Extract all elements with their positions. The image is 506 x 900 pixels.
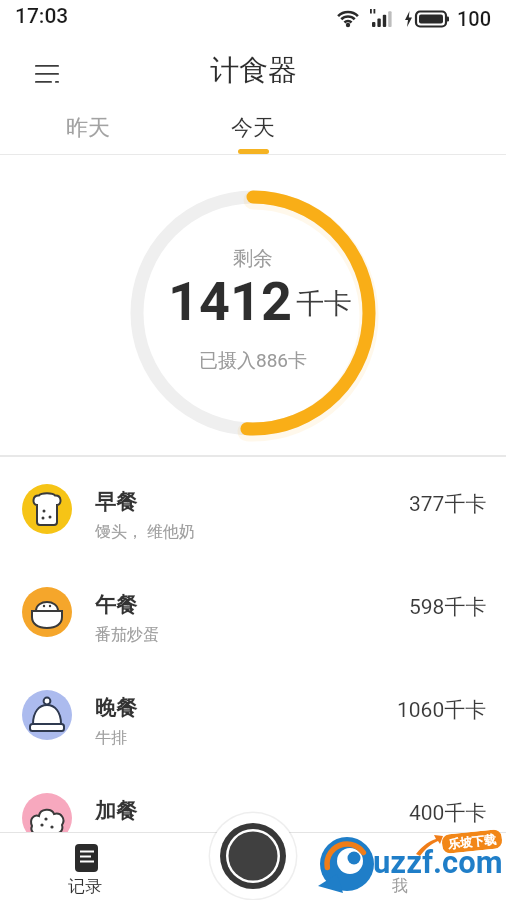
staticText: 已摄入886卡: [199, 349, 308, 373]
staticText: 1060千卡: [397, 697, 487, 723]
button[interactable]: 早餐: [0, 457, 506, 560]
staticText: 我: [392, 876, 408, 896]
staticText: 馒头， 维他奶: [95, 522, 195, 542]
button[interactable]: 午餐: [0, 560, 506, 663]
button[interactable]: 加餐: [0, 766, 506, 869]
staticText: 午餐: [95, 592, 137, 618]
staticText: 千卡: [296, 286, 352, 321]
staticText: 记录: [68, 876, 102, 897]
button[interactable]: 记录: [62, 844, 108, 897]
staticText: 昨天: [66, 114, 110, 142]
staticText: 今天: [231, 114, 275, 142]
staticText: 计食器: [210, 52, 297, 89]
staticText: 1412: [168, 270, 292, 333]
staticText: 400千卡: [409, 800, 487, 826]
button[interactable]: 我: [360, 832, 440, 900]
staticText: 早餐: [95, 489, 137, 515]
button[interactable]: [35, 65, 59, 83]
staticText: 番茄炒蛋: [95, 625, 159, 645]
button[interactable]: 晚餐: [0, 663, 506, 766]
staticText: uzzf.com: [373, 844, 503, 880]
staticText: 17:03: [15, 4, 69, 29]
staticText: 牛排: [95, 728, 127, 748]
staticText: 377千卡: [409, 491, 487, 517]
button[interactable]: 昨天: [55, 108, 121, 148]
staticText: 剩余: [233, 246, 273, 271]
button[interactable]: 今天: [220, 108, 286, 148]
staticText: 加餐: [95, 798, 137, 824]
staticText: 乐坡下载: [447, 831, 497, 851]
staticText: 598千卡: [409, 594, 487, 620]
staticText: 晚餐: [95, 695, 137, 721]
button[interactable]: [205, 808, 301, 900]
staticText: 蛋糕: [95, 831, 127, 851]
staticText: 100: [457, 7, 492, 30]
